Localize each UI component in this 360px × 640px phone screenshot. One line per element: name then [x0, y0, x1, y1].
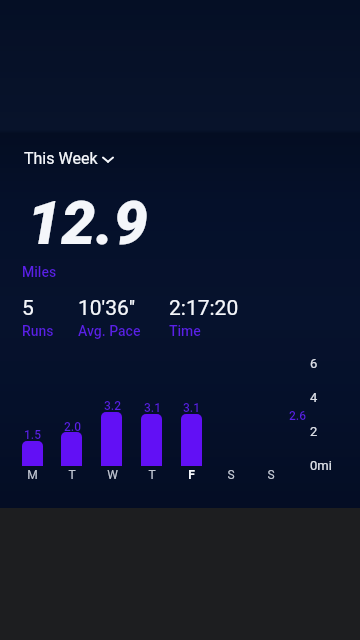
staticText: Runs [22, 323, 54, 339]
button[interactable]: F 3.1 miles [181, 414, 202, 466]
staticText: 2.6 [289, 409, 306, 423]
staticText: 3.2 [104, 399, 121, 413]
staticText: F [188, 468, 195, 482]
staticText: Miles [22, 264, 57, 280]
staticText: M [27, 468, 38, 482]
staticText: 2:17:20 [169, 296, 239, 321]
staticText: 6 [310, 356, 318, 371]
button[interactable]: T 3.1 miles [141, 414, 162, 466]
staticText: W [107, 468, 118, 482]
button[interactable]: T 2.0 miles [61, 432, 82, 466]
staticText: 12.9 [27, 187, 148, 258]
staticText: 3.1 [144, 401, 161, 415]
button[interactable]: 5 [22, 296, 54, 339]
staticText: Time [169, 323, 201, 339]
button[interactable]: 2:17:20 [169, 296, 239, 339]
button[interactable]: W 3.2 miles [101, 412, 122, 466]
staticText: 10'36'' [78, 296, 136, 321]
staticText: 3.1 [183, 401, 200, 415]
staticText: This Week [24, 149, 98, 168]
staticText: T [68, 468, 76, 482]
staticText: 4 [310, 390, 318, 405]
staticText: T [148, 468, 156, 482]
staticText: 5 [22, 296, 34, 321]
button[interactable]: M 1.5 miles [22, 441, 43, 466]
staticText: S [267, 468, 275, 482]
staticText: 2 [310, 424, 318, 439]
button[interactable]: This Week [22, 149, 115, 168]
staticText: 2.0 [64, 420, 81, 434]
staticText: 1.5 [24, 428, 41, 442]
staticText: 0mi [310, 458, 332, 473]
button[interactable]: 10'36'' [78, 296, 141, 339]
staticText: Avg. Pace [78, 323, 141, 339]
staticText: S [227, 468, 235, 482]
